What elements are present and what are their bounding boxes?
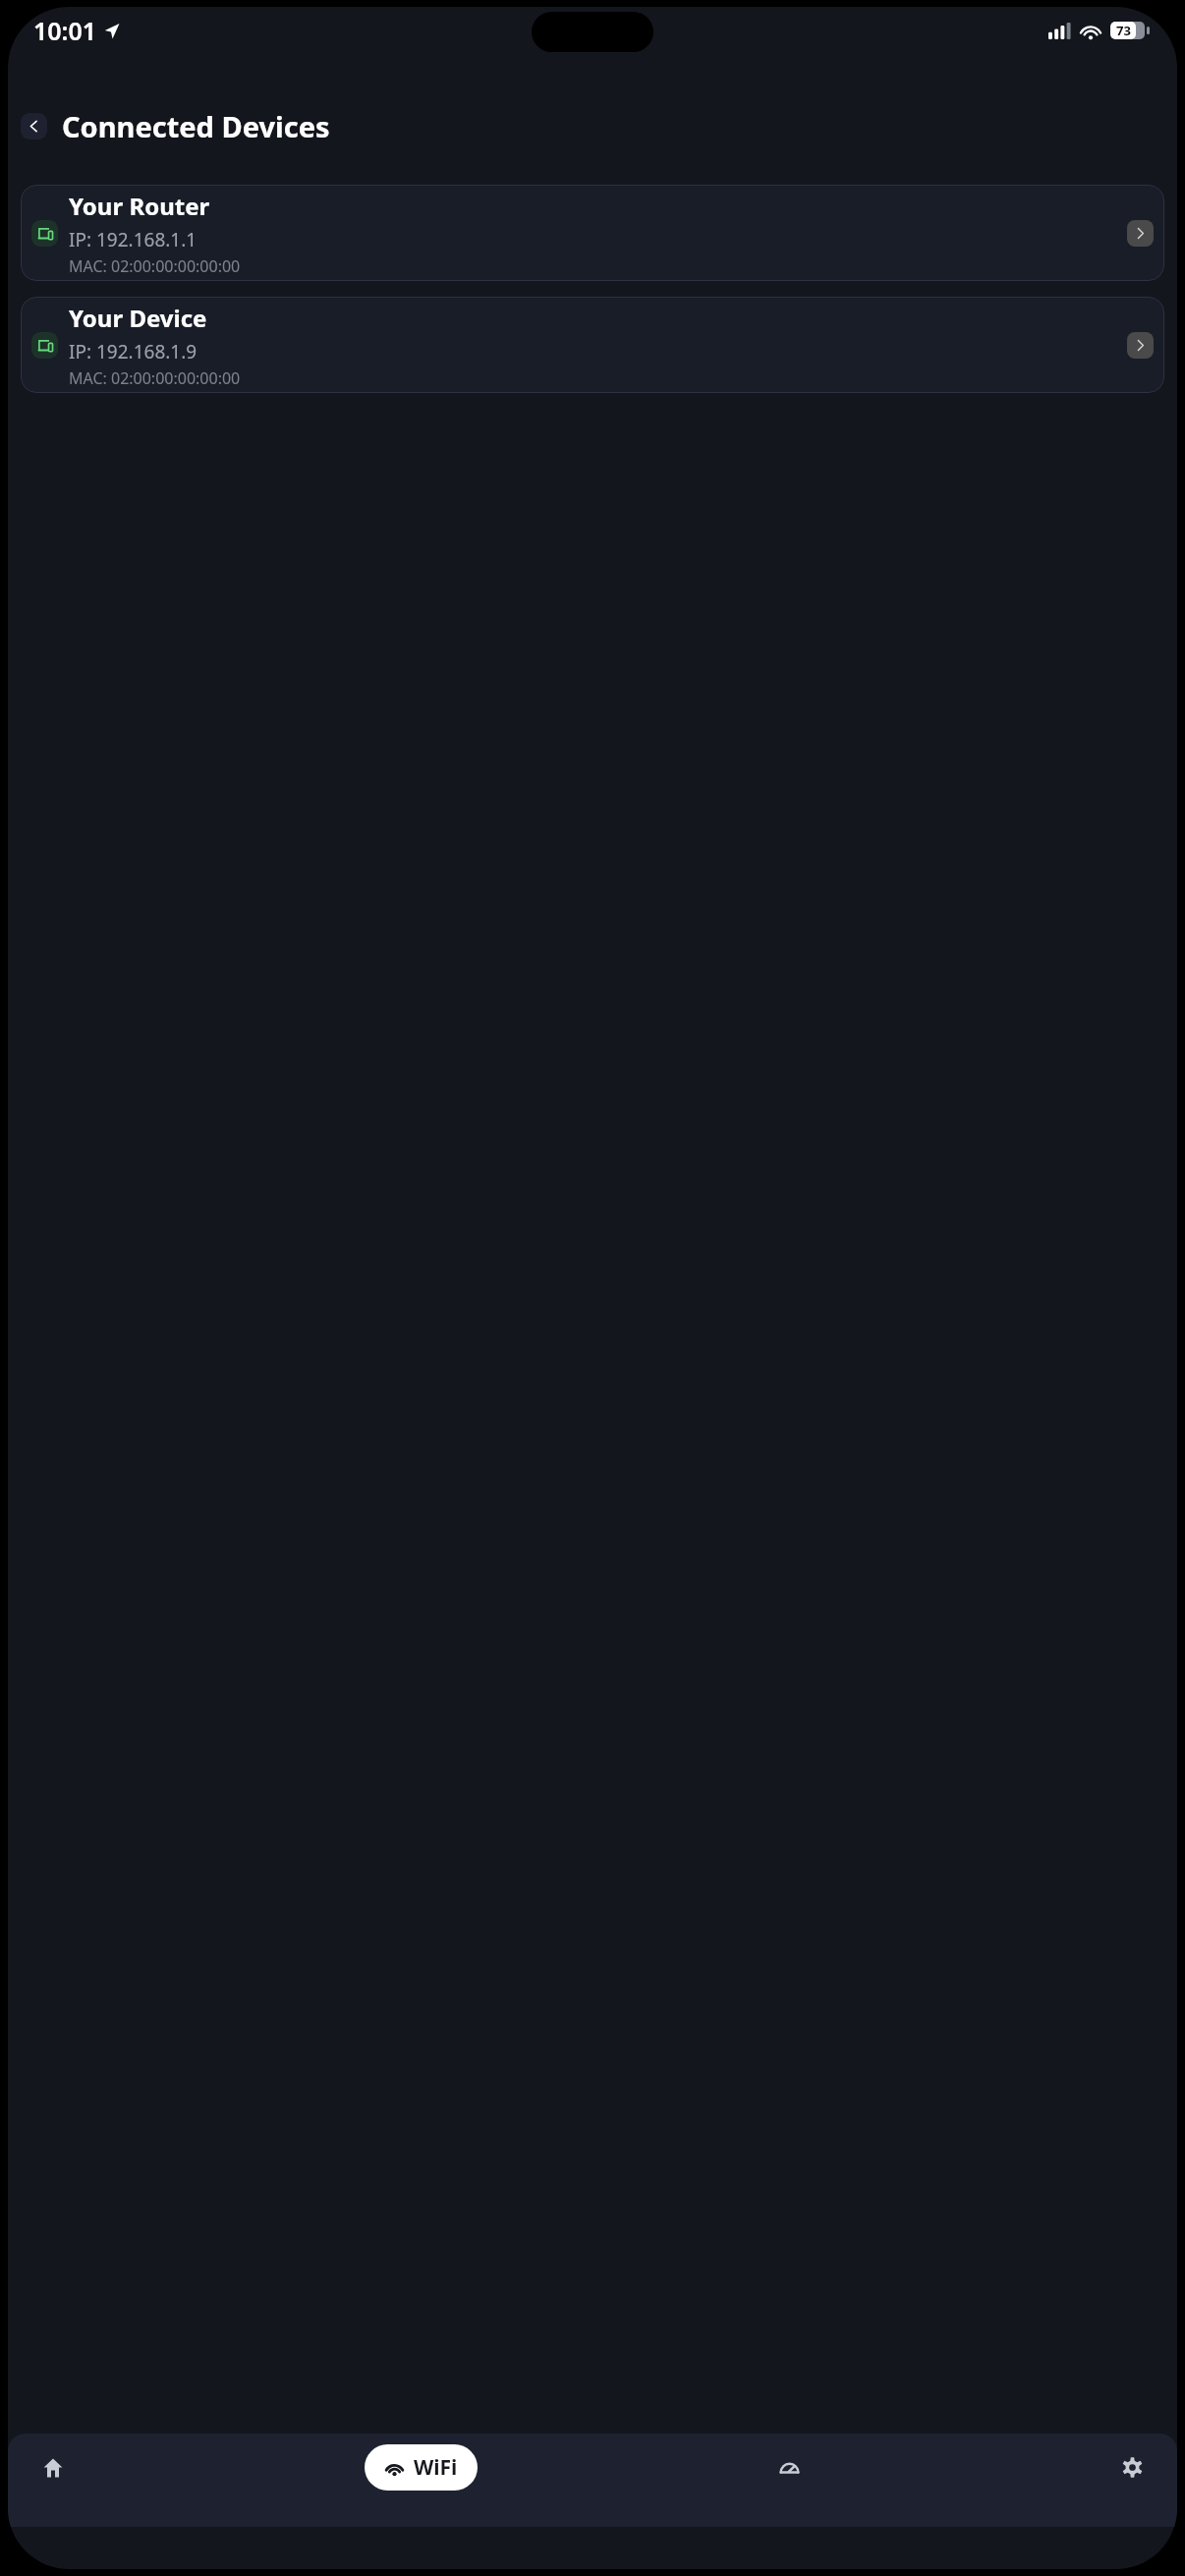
- staticText: Your Device: [69, 302, 207, 334]
- button[interactable]: Back: [21, 113, 47, 140]
- button[interactable]: WiFi: [365, 2444, 478, 2491]
- staticText: IP: 192.168.1.9: [69, 339, 197, 364]
- staticText: 73: [1116, 22, 1131, 39]
- staticText: WiFi: [414, 2453, 458, 2482]
- staticText: MAC: 02:00:00:00:00:00: [69, 367, 241, 389]
- button[interactable]: Home: [22, 2444, 85, 2491]
- button[interactable]: Open device details: [1127, 220, 1154, 247]
- button[interactable]: Your Device: [21, 297, 1164, 393]
- staticText: IP: 192.168.1.1: [69, 227, 197, 252]
- button[interactable]: Speed test: [758, 2444, 820, 2491]
- button[interactable]: Open device details: [1127, 332, 1154, 359]
- button[interactable]: Your Router: [21, 185, 1164, 281]
- button[interactable]: Settings: [1100, 2444, 1163, 2491]
- staticText: Connected Devices: [62, 107, 330, 145]
- staticText: MAC: 02:00:00:00:00:00: [69, 255, 241, 277]
- staticText: Your Router: [69, 190, 210, 222]
- staticText: 10:01: [33, 14, 97, 47]
